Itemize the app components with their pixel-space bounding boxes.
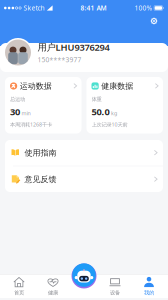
staticText: 运动数据 [20, 81, 52, 91]
staticText: 30 [10, 106, 20, 118]
staticText: 上次记录10天前 [91, 121, 127, 128]
button[interactable]: 我的 [132, 275, 166, 298]
staticText: 使用指南 [25, 148, 57, 158]
staticText: 用户LHU9376294 [37, 41, 109, 53]
staticText: 总运动 [10, 96, 25, 103]
button[interactable]: AI assistant [70, 262, 98, 290]
staticText: 体重 [91, 96, 101, 103]
staticText: 意见反馈 [25, 174, 57, 184]
button[interactable]: 设备 [98, 275, 132, 298]
staticText: 首页 [14, 289, 24, 296]
button[interactable]: Settings [147, 14, 161, 28]
button[interactable]: 健康数据 [86, 77, 163, 133]
button[interactable]: 运动数据 [5, 77, 81, 133]
staticText: 健康数据 [101, 81, 133, 91]
staticText: 50.0 [91, 106, 109, 118]
staticText: min [21, 110, 30, 117]
staticText: 150****3977 [37, 55, 81, 64]
staticText: 8:41 AM [81, 4, 107, 12]
staticText: 本周消耗1268千卡 [10, 121, 52, 128]
staticText: 设备 [110, 289, 120, 296]
button[interactable]: 健康 [36, 275, 70, 298]
staticText: kg [111, 110, 117, 117]
button[interactable]: 首页 [2, 275, 36, 298]
staticText: 100% [134, 4, 152, 12]
button[interactable]: 使用指南 [5, 140, 163, 166]
staticText: 我的 [144, 289, 154, 296]
staticText: 健康 [48, 289, 58, 296]
button[interactable]: 意见反馈 [5, 166, 163, 192]
staticText: Sketch [24, 4, 45, 12]
